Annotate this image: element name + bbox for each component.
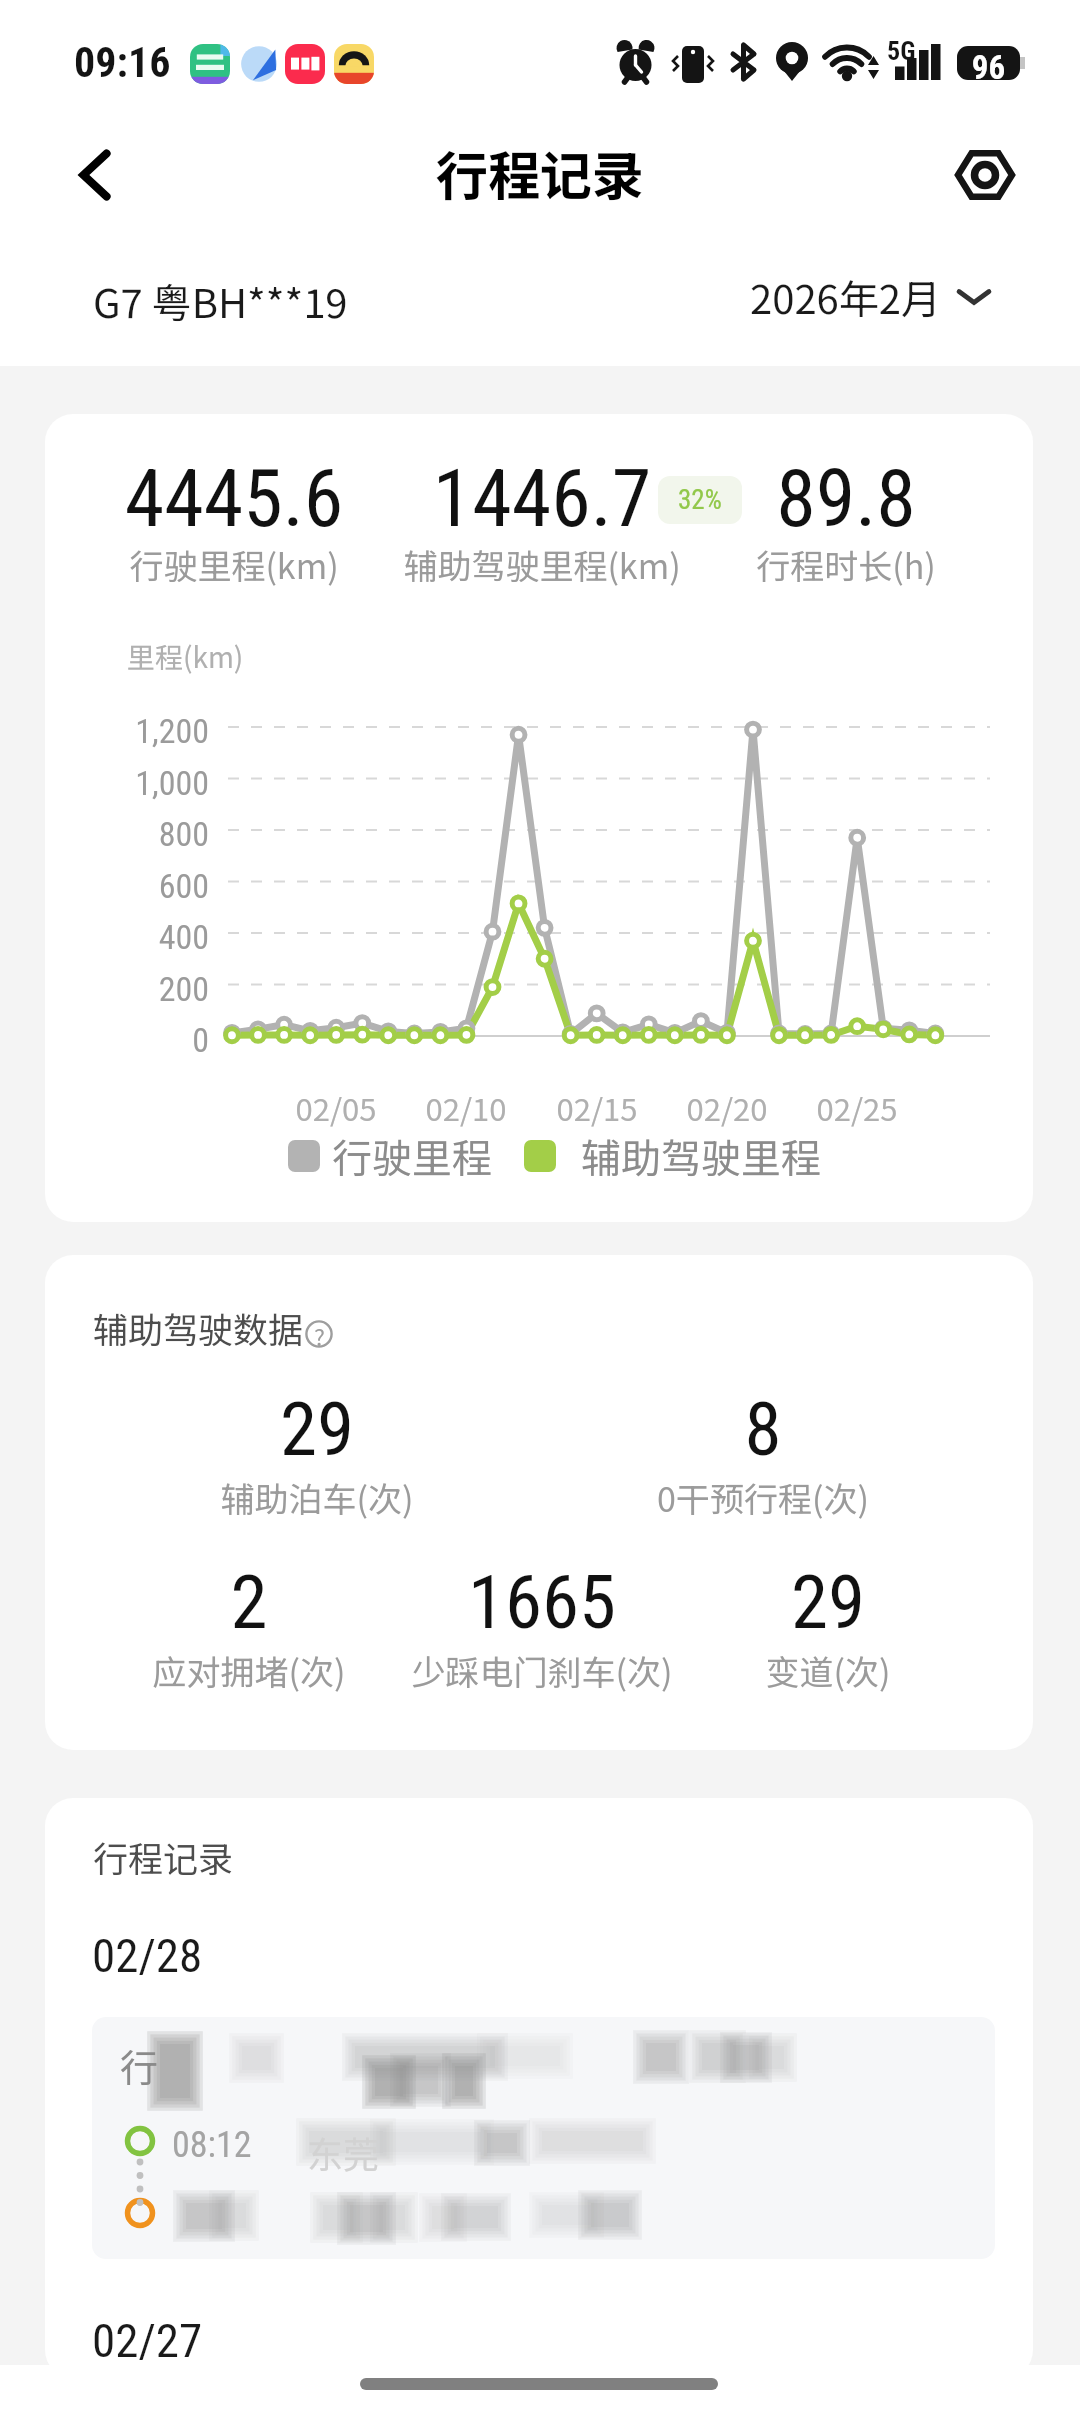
staticText: 1446.7 <box>392 452 692 546</box>
staticText: 0 <box>59 1020 209 1060</box>
staticText: 02/20 <box>657 1085 797 1130</box>
staticText: 行驶里程(km) <box>84 540 384 589</box>
staticText: 0干预行程(次) <box>563 1473 963 1522</box>
button[interactable]: 行 <box>92 2017 995 2259</box>
staticText: 2026年2月 <box>750 268 941 326</box>
staticText: 1,200 <box>59 711 209 751</box>
staticText: 1,000 <box>59 763 209 803</box>
staticText: 89.8 <box>696 452 996 546</box>
staticText: 400 <box>59 917 209 957</box>
staticText: 08:12 <box>172 2124 252 2166</box>
staticText: 1665 <box>342 1558 742 1646</box>
staticText: 800 <box>59 814 209 854</box>
staticText: 29 <box>628 1558 1028 1646</box>
staticText: 里程(km) <box>127 636 244 677</box>
staticText: 行程记录 <box>93 1831 234 1882</box>
staticText: 东莞 <box>307 2126 380 2178</box>
button[interactable]: 2026年2月 <box>750 266 991 328</box>
staticText: 行程记录 <box>436 135 645 210</box>
staticText: 96 <box>957 48 1020 87</box>
staticText: 应对拥堵(次) <box>49 1646 449 1695</box>
button[interactable]: Info <box>305 1320 333 1348</box>
staticText: 辅助驾驶里程 <box>581 1127 821 1185</box>
staticText: 02/28 <box>92 1928 203 1983</box>
staticText: 02/15 <box>527 1085 667 1130</box>
staticText: 行 <box>120 2038 159 2093</box>
staticText: 5G <box>887 36 916 66</box>
staticText: 少踩电门刹车(次) <box>342 1646 742 1695</box>
staticText: 辅助驾驶数据 <box>93 1302 304 1353</box>
staticText: 02/05 <box>266 1085 406 1130</box>
staticText: 辅助驾驶里程(km) <box>392 540 692 589</box>
staticText: G7 粤BH***19 <box>93 272 348 330</box>
staticText: 8 <box>563 1385 963 1473</box>
staticText: 辅助泊车(次) <box>117 1473 517 1522</box>
staticText: 变道(次) <box>628 1646 1028 1695</box>
staticText: 02/10 <box>396 1085 536 1130</box>
staticText: 2 <box>49 1558 449 1646</box>
staticText: 09:16 <box>74 38 171 87</box>
staticText: 600 <box>59 866 209 906</box>
staticText: 29 <box>117 1385 517 1473</box>
staticText: 02/27 <box>92 2313 203 2368</box>
staticText: 32% <box>678 484 722 516</box>
staticText: ? <box>314 1319 325 1347</box>
staticText: 行驶里程 <box>332 1127 492 1185</box>
staticText: 200 <box>59 969 209 1009</box>
staticText: 行程时长(h) <box>696 540 996 589</box>
staticText: 4445.6 <box>84 452 384 546</box>
button[interactable]: Back <box>40 120 150 230</box>
button[interactable]: Settings <box>930 120 1040 230</box>
staticText: 02/25 <box>787 1085 927 1130</box>
